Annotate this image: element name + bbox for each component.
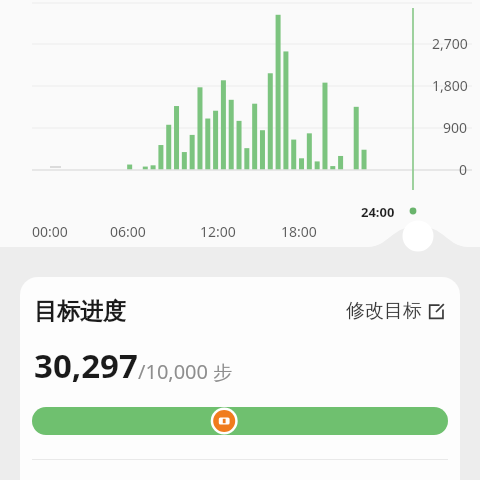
staticText: 18:00 bbox=[281, 222, 317, 241]
staticText: 目标进度 bbox=[34, 297, 126, 326]
staticText: 06:00 bbox=[110, 222, 146, 241]
staticText: 1,800 bbox=[432, 76, 468, 95]
button[interactable] bbox=[32, 407, 448, 435]
staticText: /10,000 bbox=[138, 358, 208, 385]
staticText: 0 bbox=[459, 160, 468, 179]
other: Edit goal bbox=[428, 303, 445, 320]
staticText: 900 bbox=[443, 118, 468, 137]
staticText: 00:00 bbox=[32, 222, 68, 241]
staticText: 12:00 bbox=[200, 222, 236, 241]
staticText: 2,700 bbox=[432, 34, 468, 53]
button[interactable]: 修改目标 bbox=[344, 296, 447, 326]
staticText: 24:00 bbox=[361, 203, 395, 221]
staticText: 步 bbox=[213, 361, 232, 385]
staticText: 修改目标 bbox=[346, 299, 422, 323]
staticText: 30,297 bbox=[34, 343, 138, 388]
